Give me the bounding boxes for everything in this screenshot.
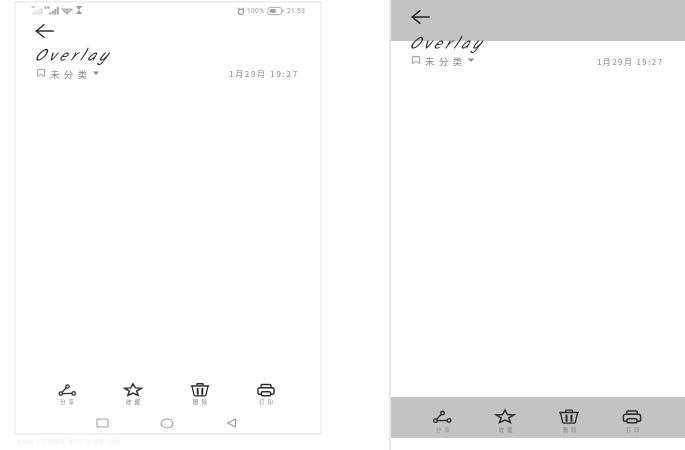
staticText: 收藏	[126, 398, 144, 406]
staticText: 未分类	[425, 54, 467, 66]
staticText: 分享	[436, 426, 453, 434]
staticText: 收藏	[499, 426, 516, 434]
staticText: 删除	[193, 398, 211, 406]
staticText: 100%	[247, 7, 265, 15]
staticText: 删除	[563, 426, 580, 434]
button[interactable]: 未分类	[412, 54, 475, 66]
button[interactable]: Delete	[545, 404, 593, 438]
button[interactable]: Print	[608, 404, 656, 438]
button[interactable]: Back	[218, 412, 245, 434]
button[interactable]: Print	[243, 380, 289, 410]
staticText: 1月29月 19:27	[597, 56, 664, 68]
staticText: 1月29月 19:27	[229, 68, 299, 80]
button[interactable]: Home	[153, 412, 180, 434]
staticText: 分享	[60, 398, 78, 406]
button[interactable]: Recents	[89, 412, 116, 434]
button[interactable]: Back	[407, 4, 435, 29]
staticText: Overlay	[34, 43, 111, 70]
staticText: Overlay	[409, 31, 484, 58]
button[interactable]: Favorite	[110, 380, 156, 410]
button[interactable]: 未分类	[37, 67, 100, 79]
staticText: 未分类	[50, 67, 92, 79]
button[interactable]: Share	[418, 404, 466, 438]
button[interactable]: Share	[44, 380, 90, 410]
button[interactable]: Favorite	[481, 404, 529, 438]
button[interactable]: Back	[32, 19, 58, 43]
staticText: 打印	[626, 426, 643, 434]
staticText: 21:53	[287, 7, 306, 15]
button[interactable]: Delete	[177, 380, 223, 410]
staticText: 笔记应用界面底部操作栏示意图 说明	[16, 436, 121, 445]
staticText: 打印	[259, 398, 277, 406]
